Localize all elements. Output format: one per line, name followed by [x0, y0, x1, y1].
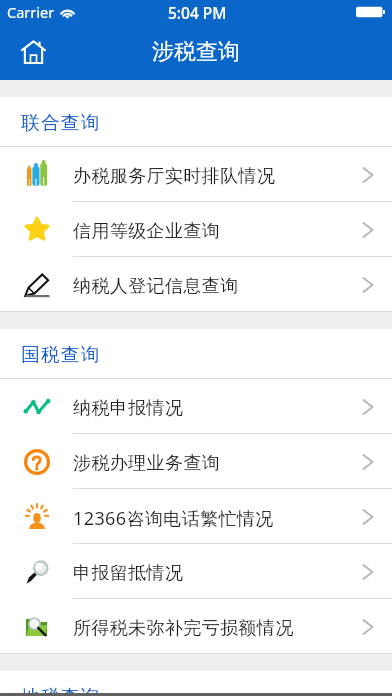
button[interactable]: Home: [10, 29, 56, 75]
staticText: 5:04 PM: [168, 2, 227, 23]
staticText: 办税服务厅实时排队情况: [73, 165, 276, 188]
button[interactable]: 所得税未弥补完亏损额情况: [0, 599, 392, 654]
staticText: 联合查询: [21, 111, 101, 134]
staticText: 国税查询: [21, 343, 101, 366]
staticText: 所得税未弥补完亏损额情况: [73, 617, 294, 640]
staticText: 12366咨询电话繁忙情况: [73, 506, 274, 531]
button[interactable]: 申报留抵情况: [0, 544, 392, 599]
staticText: 地税查询: [21, 685, 101, 696]
button[interactable]: 12366咨询电话繁忙情况: [0, 489, 392, 544]
staticText: 申报留抵情况: [73, 562, 184, 585]
staticText: 涉税办理业务查询: [73, 452, 221, 475]
button[interactable]: 纳税申报情况: [0, 379, 392, 434]
button[interactable]: 信用等级企业查询: [0, 202, 392, 257]
button[interactable]: 办税服务厅实时排队情况: [0, 147, 392, 202]
staticText: 信用等级企业查询: [73, 220, 221, 243]
staticText: 涉税查询: [152, 38, 240, 66]
staticText: 纳税人登记信息查询: [73, 275, 239, 298]
staticText: Carrier: [7, 2, 55, 22]
staticText: 纳税申报情况: [73, 397, 184, 420]
button[interactable]: 纳税人登记信息查询: [0, 257, 392, 312]
button[interactable]: 涉税办理业务查询: [0, 434, 392, 489]
